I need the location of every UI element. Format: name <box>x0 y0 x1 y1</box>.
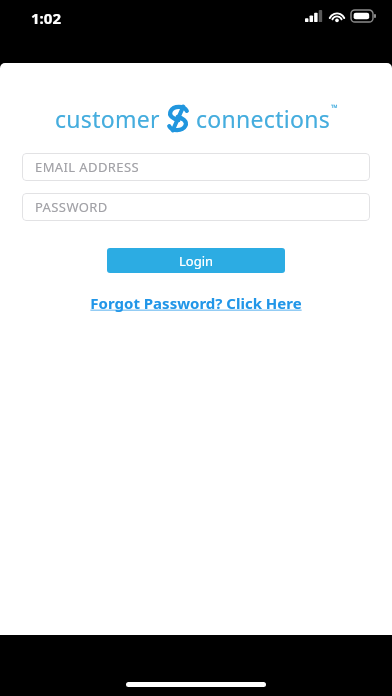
staticText: Forgot Password? Click Here <box>90 293 302 313</box>
staticText: 1:02 <box>31 8 61 28</box>
button[interactable]: PASSWORD <box>22 193 370 221</box>
staticText: connections <box>196 103 331 134</box>
button[interactable]: Login <box>107 248 285 273</box>
button[interactable]: Forgot Password? Click Here <box>86 291 306 315</box>
staticText: Login <box>179 252 214 270</box>
staticText: PASSWORD <box>35 198 108 216</box>
button[interactable]: EMAIL ADDRESS <box>22 153 370 181</box>
staticText: EMAIL ADDRESS <box>35 158 140 176</box>
staticText: ™ <box>331 101 338 113</box>
staticText: customer <box>55 103 160 134</box>
